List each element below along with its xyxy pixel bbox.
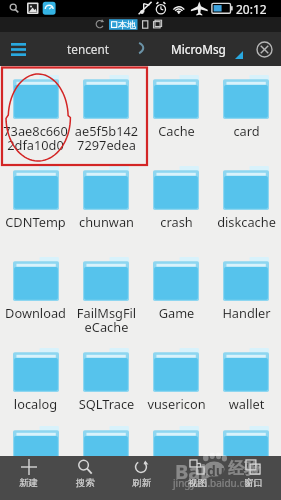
button[interactable] xyxy=(71,430,141,456)
staticText: localog xyxy=(3,395,68,412)
button[interactable]: ae5f5b1427297edea xyxy=(71,66,141,154)
staticText: 20:12 xyxy=(236,1,267,17)
staticText: Game xyxy=(144,304,209,321)
button[interactable]: vusericon xyxy=(141,339,211,412)
button[interactable]: Close xyxy=(252,37,276,61)
staticText: CDNTemp xyxy=(3,213,68,230)
button[interactable]: 视图 xyxy=(169,456,225,489)
staticText: Cache xyxy=(144,122,209,139)
staticText: 本地 xyxy=(118,19,136,30)
staticText: Handler xyxy=(214,304,279,321)
button[interactable]: Download xyxy=(0,248,71,321)
staticText: Bai xyxy=(175,458,207,485)
button[interactable]: SQLTrace xyxy=(71,339,141,412)
button[interactable]: Game xyxy=(141,248,211,321)
staticText: ae5f5b1427297edea xyxy=(74,122,139,154)
staticText: 新建 xyxy=(19,477,38,489)
button[interactable]: diskcache xyxy=(211,157,281,230)
staticText: SQLTrace xyxy=(74,395,139,412)
button[interactable]: Handler xyxy=(211,248,281,321)
button[interactable]: 刷新 xyxy=(113,456,169,489)
button[interactable]: CDNTemp xyxy=(0,157,71,230)
button[interactable] xyxy=(141,430,211,456)
button[interactable]: 窗口 xyxy=(225,456,281,489)
button[interactable]: wallet xyxy=(211,339,281,412)
staticText: vusericon xyxy=(144,395,209,412)
staticText: card xyxy=(214,122,279,139)
button[interactable]: card xyxy=(211,66,281,139)
staticText: 刷新 xyxy=(132,477,151,489)
button[interactable]: 73ae8c6602dfa10d0 xyxy=(0,66,71,154)
staticText: FailMsgFileCache xyxy=(74,304,139,336)
button[interactable]: localog xyxy=(0,339,71,412)
staticText: diskcache xyxy=(214,213,279,230)
button[interactable] xyxy=(211,430,281,456)
button[interactable]: FailMsgFileCache xyxy=(71,248,141,336)
staticText: jingyan.baidu.com xyxy=(173,476,260,490)
button[interactable]: chunwan xyxy=(71,157,141,230)
staticText: 视图 xyxy=(188,477,207,489)
staticText: 搜索 xyxy=(76,477,95,489)
button[interactable]: 搜索 xyxy=(57,456,113,489)
staticText: crash xyxy=(144,213,209,230)
staticText: 经验 xyxy=(228,459,260,479)
staticText: tencent xyxy=(67,41,110,57)
button[interactable]: crash xyxy=(141,157,211,230)
staticText: chunwan xyxy=(74,213,139,230)
staticText: 窗口 xyxy=(244,477,263,489)
button[interactable]: tencent xyxy=(61,36,116,62)
button[interactable]: Menu xyxy=(6,37,30,61)
button[interactable]: 新建 xyxy=(0,456,57,489)
staticText: wallet xyxy=(214,395,279,412)
staticText: MicroMsg xyxy=(171,41,226,57)
button[interactable]: Cache xyxy=(141,66,211,139)
button[interactable]: MicroMsg xyxy=(165,36,232,62)
staticText: Download xyxy=(3,304,68,321)
button[interactable] xyxy=(0,430,71,456)
staticText: 73ae8c6602dfa10d0 xyxy=(3,122,68,154)
staticText: du xyxy=(207,461,225,480)
